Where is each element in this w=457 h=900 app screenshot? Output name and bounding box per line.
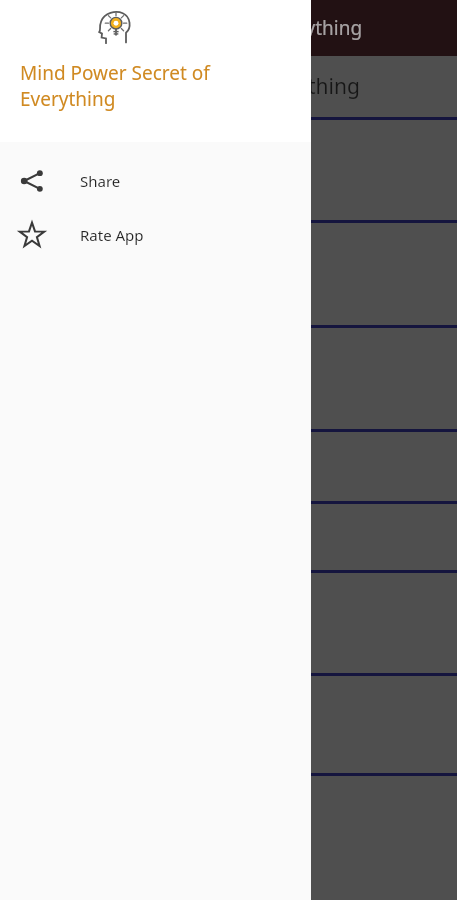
button[interactable]: 3. Mind Power – Having (0, 223, 457, 325)
staticText: 2. The Secret of Having (16, 156, 243, 185)
button[interactable]: 1. Mind Power Secret of Everything (0, 56, 457, 117)
other: Share (18, 167, 46, 195)
button[interactable]: Rate App (0, 208, 311, 262)
button[interactable]: 6. Attention. (0, 504, 457, 570)
button[interactable]: 2. The Secret of Having (0, 120, 457, 220)
staticText: Mind Power Secret of Everything (72, 15, 363, 41)
staticText: 1. Mind Power Secret of Everything (16, 72, 360, 101)
button[interactable]: Share (0, 154, 311, 208)
button[interactable]: 9. Focus on (0, 776, 457, 900)
button[interactable]: 4. Imagination - Will, (0, 328, 457, 429)
other: Rate App (18, 221, 46, 249)
staticText: Mind Power Secret of Everything (20, 60, 271, 112)
button[interactable]: 5. Power of Attention. (0, 432, 457, 501)
button[interactable]: 8. Thinking Well (0, 676, 457, 773)
button[interactable]: 7. Being Strong (0, 573, 457, 673)
staticText: Share (80, 171, 121, 191)
staticText: Rate App (80, 225, 144, 245)
